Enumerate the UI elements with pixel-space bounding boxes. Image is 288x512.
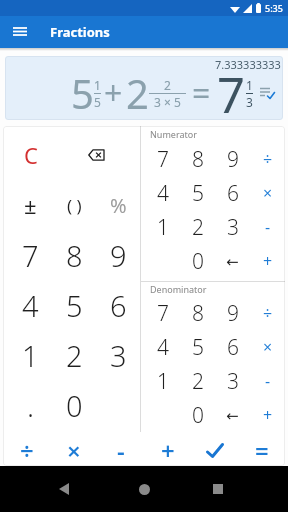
button[interactable]: 1: [146, 210, 180, 244]
button[interactable]: [53, 130, 140, 180]
staticText: 3: [227, 367, 239, 396]
staticText: .: [27, 386, 35, 425]
staticText: 5: [192, 179, 204, 208]
button[interactable]: 5: [52, 280, 96, 330]
staticText: 8: [192, 145, 204, 174]
button[interactable]: 3: [96, 330, 140, 380]
button[interactable]: ←: [215, 244, 250, 278]
staticText: ±: [24, 190, 37, 220]
staticText: ←: [226, 407, 239, 424]
button[interactable]: ( ): [52, 180, 96, 230]
button[interactable]: [210, 481, 226, 497]
button[interactable]: 6: [215, 330, 250, 364]
button[interactable]: 9: [215, 296, 250, 330]
button[interactable]: 2: [180, 364, 215, 398]
staticText: 3: [227, 213, 239, 242]
button[interactable]: [191, 434, 238, 466]
button[interactable]: 4: [146, 330, 180, 364]
button[interactable]: 8: [52, 230, 96, 280]
button[interactable]: 4: [146, 176, 180, 210]
button[interactable]: 9: [215, 142, 250, 176]
staticText: +: [104, 71, 123, 115]
button[interactable]: +: [144, 434, 191, 466]
staticText: 5: [66, 286, 83, 325]
staticText: Denominator: [150, 283, 207, 295]
button[interactable]: ×: [50, 434, 97, 466]
staticText: 8: [192, 299, 204, 328]
button[interactable]: 4: [9, 280, 52, 330]
button[interactable]: [13, 27, 27, 37]
button[interactable]: 3: [215, 364, 250, 398]
button[interactable]: [136, 481, 152, 497]
button[interactable]: 7: [146, 296, 180, 330]
staticText: 0: [66, 386, 83, 425]
staticText: ( ): [67, 194, 82, 217]
button[interactable]: ×: [250, 176, 285, 210]
button[interactable]: ×: [250, 330, 285, 364]
button[interactable]: -: [250, 364, 285, 398]
staticText: 4: [157, 179, 169, 208]
staticText: 3 × 5: [154, 94, 181, 110]
button[interactable]: 7.333333333: [5, 56, 283, 120]
staticText: 3: [246, 94, 253, 110]
staticText: 7: [22, 236, 39, 275]
staticText: =: [255, 434, 269, 466]
staticText: 3: [110, 336, 127, 375]
button[interactable]: 1: [9, 330, 52, 380]
staticText: %: [110, 192, 127, 219]
button[interactable]: 5: [180, 330, 215, 364]
staticText: ÷: [20, 434, 34, 466]
button[interactable]: =: [238, 434, 285, 466]
staticText: Fractions: [50, 23, 110, 41]
staticText: 9: [227, 145, 239, 174]
button[interactable]: ÷: [3, 434, 50, 466]
button[interactable]: ÷: [250, 296, 285, 330]
button[interactable]: 0: [52, 380, 96, 430]
staticText: ←: [226, 253, 239, 270]
button[interactable]: 8: [180, 296, 215, 330]
button[interactable]: -: [250, 210, 285, 244]
button[interactable]: ←: [215, 398, 250, 432]
staticText: 5: [94, 94, 101, 110]
staticText: 9: [227, 299, 239, 328]
staticText: Numerator: [150, 128, 197, 140]
button[interactable]: ±: [9, 180, 52, 230]
button[interactable]: 8: [180, 142, 215, 176]
button[interactable]: 1: [146, 364, 180, 398]
button[interactable]: 2: [180, 210, 215, 244]
staticText: 2: [164, 77, 171, 93]
button[interactable]: 7: [146, 142, 180, 176]
button[interactable]: 2: [52, 330, 96, 380]
button[interactable]: 9: [96, 230, 140, 280]
button[interactable]: +: [250, 398, 285, 432]
staticText: +: [161, 434, 175, 466]
button[interactable]: %: [96, 180, 140, 230]
staticText: 5: [192, 333, 204, 362]
button[interactable]: 6: [215, 176, 250, 210]
button[interactable]: +: [250, 244, 285, 278]
staticText: -: [265, 216, 271, 238]
button[interactable]: -: [97, 434, 144, 466]
staticText: 1: [94, 77, 101, 93]
button[interactable]: 3: [215, 210, 250, 244]
staticText: 1: [157, 367, 169, 396]
button[interactable]: .: [9, 380, 52, 430]
staticText: 7: [157, 299, 169, 328]
button[interactable]: 6: [96, 280, 140, 330]
staticText: 9: [110, 236, 127, 275]
button[interactable]: 7: [9, 230, 52, 280]
staticText: ×: [67, 434, 81, 466]
button[interactable]: 5: [180, 176, 215, 210]
staticText: 2: [66, 336, 83, 375]
button[interactable]: 0: [180, 398, 215, 432]
button[interactable]: ÷: [250, 142, 285, 176]
staticText: ×: [263, 182, 273, 204]
staticText: 6: [110, 286, 127, 325]
button[interactable]: [56, 481, 72, 497]
staticText: ÷: [263, 148, 273, 170]
button[interactable]: 0: [180, 244, 215, 278]
button[interactable]: C: [9, 130, 53, 180]
